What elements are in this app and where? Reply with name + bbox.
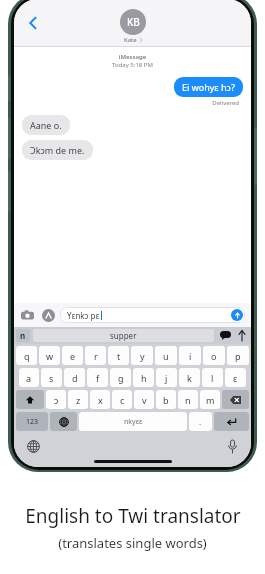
staticText: u [163, 350, 169, 362]
button[interactable]: t [108, 346, 129, 365]
button[interactable]: Change keyboard language [50, 412, 77, 431]
staticText: Delivered [22, 99, 239, 107]
staticText: English to Twi translator [25, 503, 241, 529]
button[interactable]: k [179, 368, 200, 387]
button[interactable]: g [110, 368, 131, 387]
button[interactable]: s [41, 368, 62, 387]
button[interactable]: nkyɛɛ [79, 412, 187, 431]
button[interactable]: Change keyboard language [24, 437, 42, 455]
staticText: . [199, 416, 202, 427]
button[interactable]: z [68, 390, 88, 409]
staticText: o [211, 350, 217, 362]
staticText: q [24, 350, 30, 362]
staticText: v [142, 394, 147, 406]
button[interactable]: m [200, 390, 220, 409]
staticText: ɔ [54, 394, 59, 406]
staticText: z [76, 394, 81, 406]
button[interactable]: q [16, 346, 37, 365]
staticText: j [165, 372, 168, 384]
staticText: t [117, 350, 121, 362]
button[interactable]: ε [225, 368, 246, 387]
staticText: i [189, 350, 192, 362]
button[interactable]: b [156, 390, 176, 409]
staticText: n [185, 394, 191, 406]
button[interactable]: Ɔkɔm de me. [22, 140, 93, 160]
staticText: l [211, 372, 214, 384]
button[interactable]: x [90, 390, 110, 409]
staticText: n [20, 330, 26, 341]
staticText: m [206, 394, 215, 406]
button[interactable]: Suggestions [217, 329, 233, 342]
staticText: s [49, 372, 54, 384]
button[interactable]: Apps [39, 306, 57, 324]
staticText: supper [110, 330, 137, 341]
button[interactable]: e [62, 346, 83, 365]
staticText: Ei wohyɛ hɔ? [182, 81, 235, 93]
staticText: y [140, 350, 145, 362]
button[interactable]: Keyboard layout [16, 329, 30, 342]
staticText: ε [233, 372, 238, 384]
staticText: Today 5:18 PM [22, 61, 243, 69]
button[interactable]: Back [20, 10, 46, 36]
staticText: r [94, 350, 98, 362]
staticText: f [96, 372, 100, 384]
button[interactable]: p [227, 346, 249, 365]
staticText: g [118, 372, 124, 384]
staticText: d [72, 372, 78, 384]
staticText: x [98, 394, 103, 406]
button[interactable]: Dictation [223, 437, 241, 455]
staticText: (translates single words) [58, 534, 207, 552]
staticText: c [120, 394, 125, 406]
button[interactable]: l [202, 368, 223, 387]
button[interactable]: Send [231, 309, 243, 321]
button[interactable]: n [178, 390, 198, 409]
button[interactable]: u [155, 346, 177, 365]
button[interactable]: i [179, 346, 201, 365]
staticText: KB [127, 15, 140, 29]
button[interactable]: supper [33, 329, 214, 342]
button[interactable]: d [64, 368, 85, 387]
button[interactable]: v [134, 390, 154, 409]
staticText: k [187, 372, 192, 384]
staticText: Kate [124, 36, 137, 44]
staticText: Yɛnkɔ pɛ [67, 310, 100, 321]
staticText: h [141, 372, 147, 384]
button[interactable]: h [133, 368, 154, 387]
button[interactable]: f [87, 368, 108, 387]
button[interactable]: o [203, 346, 225, 365]
button[interactable]: c [112, 390, 132, 409]
staticText: Ɔkɔm de me. [30, 144, 85, 156]
button[interactable]: j [156, 368, 177, 387]
button[interactable]: y [131, 346, 153, 365]
button[interactable]: ɔ [46, 390, 66, 409]
button[interactable]: . [189, 412, 212, 431]
button[interactable]: 123 [16, 412, 48, 431]
button[interactable]: Expand [235, 329, 249, 342]
button[interactable]: a [19, 368, 39, 387]
staticText: 123 [26, 417, 39, 427]
button[interactable]: KB [120, 9, 146, 44]
staticText: iMessage [22, 53, 243, 61]
staticText: b [163, 394, 169, 406]
staticText: p [235, 350, 241, 362]
staticText: Aane o. [30, 119, 62, 131]
button[interactable]: Backspace [222, 390, 249, 409]
button[interactable]: Return [214, 412, 249, 431]
button[interactable]: Camera [18, 306, 36, 324]
button[interactable]: r [85, 346, 106, 365]
button[interactable]: Ei wohyɛ hɔ? [174, 77, 243, 97]
button[interactable]: w [39, 346, 60, 365]
staticText: w [46, 350, 54, 362]
staticText: nkyɛɛ [124, 417, 143, 427]
staticText: e [70, 350, 76, 362]
button[interactable]: Aane o. [22, 115, 70, 135]
button[interactable]: Yɛnkɔ pɛ [60, 307, 245, 323]
button[interactable]: Shift [16, 390, 44, 409]
staticText: a [26, 372, 32, 384]
